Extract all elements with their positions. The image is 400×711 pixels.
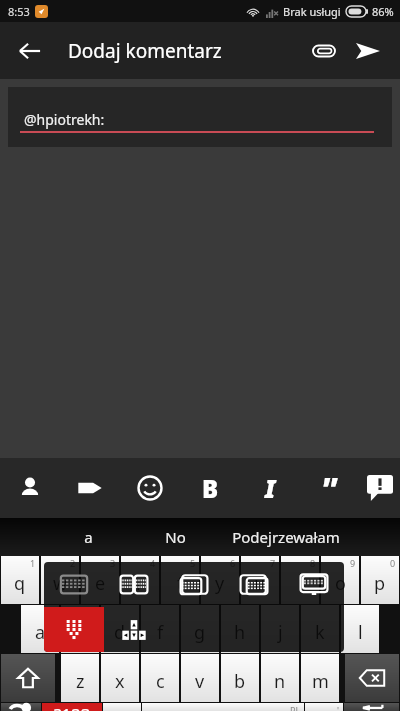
button[interactable]: e [81, 556, 119, 604]
button[interactable]: Spoiler [360, 458, 400, 518]
staticText: q [14, 571, 26, 596]
button[interactable]: k [301, 605, 339, 653]
staticText: Podejrzewałam [232, 527, 340, 547]
button[interactable]: a [33, 518, 143, 556]
staticText: 2 [70, 557, 76, 569]
button[interactable]: Space [142, 703, 304, 711]
button[interactable]: i [281, 556, 319, 604]
staticText: j [278, 620, 283, 645]
button[interactable]: Arrow keys [104, 607, 164, 652]
staticText: 4 [150, 557, 156, 569]
button[interactable]: Keyboard layout 2 [104, 562, 164, 607]
staticText: 7 [270, 557, 276, 569]
staticText: 5 [190, 557, 196, 569]
staticText: h [234, 620, 246, 645]
button[interactable]: Keyboard layout 3 [164, 562, 224, 607]
button[interactable]: Keyboard layout 4 [224, 562, 284, 607]
button[interactable]: d [101, 605, 139, 653]
staticText: f [157, 620, 164, 645]
button[interactable]: m [301, 654, 339, 702]
button[interactable]: g [181, 605, 219, 653]
button[interactable]: p [361, 556, 399, 604]
staticText: No [165, 527, 186, 547]
staticText: p [374, 571, 386, 596]
staticText: 8 [310, 557, 316, 569]
staticText: k [315, 620, 325, 645]
staticText: w [53, 571, 68, 596]
button[interactable]: q [1, 556, 39, 604]
staticText: b [234, 669, 246, 694]
staticText: I [265, 472, 276, 505]
staticText: l [358, 620, 363, 645]
button[interactable]: z [61, 654, 99, 702]
button[interactable]: t [161, 556, 199, 604]
button[interactable]: f [141, 605, 179, 653]
button[interactable]: Bold [180, 458, 240, 518]
button[interactable]: Send [346, 29, 390, 73]
staticText: i [298, 571, 303, 596]
button[interactable]: Enter [344, 703, 399, 711]
staticText: a [84, 527, 93, 547]
button[interactable]: h [221, 605, 259, 653]
button[interactable]: v [181, 654, 219, 702]
button[interactable]: Podejrzewałam [231, 518, 341, 556]
button[interactable]: Numeric keypad [44, 607, 104, 652]
button[interactable]: b [221, 654, 259, 702]
button[interactable]: c [141, 654, 179, 702]
button[interactable]: s [61, 605, 99, 653]
staticText: 6 [230, 557, 236, 569]
button[interactable]: u [241, 556, 279, 604]
button[interactable]: y [201, 556, 239, 604]
staticText: ” [323, 468, 338, 509]
staticText: t [177, 571, 184, 596]
staticText: n [274, 669, 286, 694]
button[interactable]: n [261, 654, 299, 702]
staticText: @hpiotrekh: [24, 110, 105, 129]
staticText: e [95, 571, 106, 596]
staticText: y [215, 571, 225, 596]
button[interactable]: o [321, 556, 359, 604]
button[interactable]: j [261, 605, 299, 653]
button[interactable]: Backspace [345, 654, 399, 702]
button[interactable]: , [103, 703, 141, 711]
staticText: s [76, 620, 85, 645]
button[interactable]: Back [8, 29, 52, 73]
staticText: u [254, 571, 266, 596]
button[interactable]: x [101, 654, 139, 702]
button[interactable]: Emoji [120, 458, 180, 518]
button[interactable]: Voice input [1, 703, 41, 711]
staticText: Dodaj komentarz [68, 38, 222, 64]
button[interactable]: . [305, 703, 343, 711]
button[interactable]: l [341, 605, 379, 653]
button[interactable]: No [120, 518, 230, 556]
button[interactable]: Quote [300, 458, 360, 518]
staticText: z [76, 669, 85, 694]
staticText: - [135, 704, 138, 711]
staticText: o [335, 571, 346, 596]
button[interactable]: ?123 [42, 703, 102, 711]
staticText: a [35, 620, 46, 645]
staticText: m [312, 669, 329, 694]
staticText: 9 [350, 557, 356, 569]
button[interactable]: Tag [60, 458, 120, 518]
button[interactable]: Italic [240, 458, 300, 518]
button[interactable]: a [21, 605, 59, 653]
staticText: v [195, 669, 205, 694]
button[interactable]: Keyboard layout 5 [284, 562, 344, 607]
staticText: 1 [30, 557, 36, 569]
button[interactable]: Keyboard layout 1 [44, 562, 104, 607]
staticText: 3 [110, 557, 116, 569]
staticText: 86% [372, 4, 394, 19]
staticText: Brak usługi [283, 4, 341, 19]
button[interactable]: Mention [0, 458, 60, 518]
button[interactable]: Shift [1, 654, 55, 702]
staticText: PL [290, 704, 301, 711]
staticText: 0 [390, 557, 396, 569]
button[interactable]: Attach [302, 29, 346, 73]
staticText: ?123 [54, 703, 91, 711]
button[interactable]: w [41, 556, 79, 604]
button[interactable]: r [121, 556, 159, 604]
button[interactable]: @hpiotrekh: [8, 87, 392, 147]
